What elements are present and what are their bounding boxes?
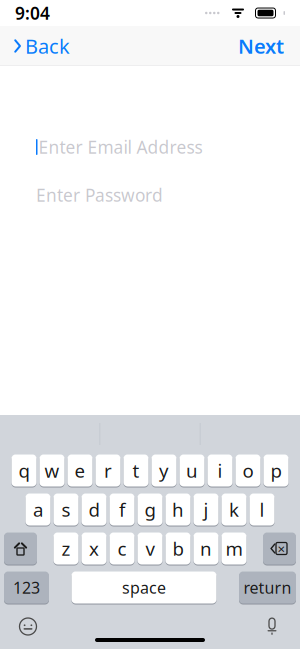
staticText: n [200, 536, 212, 561]
staticText: l [259, 497, 264, 522]
staticText: × [277, 540, 285, 557]
button[interactable]: Back [4, 25, 79, 67]
staticText: r [104, 458, 112, 483]
staticText: Enter Password [36, 183, 163, 206]
staticText: u [186, 458, 198, 483]
button[interactable]: q [11, 454, 36, 487]
button[interactable]: g [137, 493, 162, 526]
button[interactable]: r [95, 454, 120, 487]
button[interactable]: m [221, 532, 246, 565]
staticText: y [159, 458, 169, 483]
button[interactable]: w [39, 454, 64, 487]
button[interactable]: b [165, 532, 190, 565]
staticText: m [225, 536, 242, 561]
button[interactable]: return [239, 571, 296, 604]
button[interactable]: z [53, 532, 78, 565]
staticText: g [144, 497, 155, 522]
button[interactable]: v [137, 532, 162, 565]
staticText: e [74, 458, 85, 483]
staticText: k [229, 497, 239, 522]
button[interactable]: Delete [263, 532, 296, 565]
staticText: s [61, 497, 70, 522]
button[interactable]: l [249, 493, 274, 526]
staticText: f [119, 497, 125, 522]
button[interactable]: Shift [4, 532, 37, 565]
button[interactable]: c [109, 532, 134, 565]
staticText: d [88, 497, 99, 522]
staticText: o [242, 458, 253, 483]
button[interactable]: u [179, 454, 204, 487]
button[interactable]: d [81, 493, 106, 526]
button[interactable]: a [25, 493, 50, 526]
staticText: b [172, 536, 183, 561]
staticText: a [33, 497, 43, 522]
staticText: return [243, 577, 291, 598]
button[interactable]: Dictate [257, 611, 287, 641]
staticText: Next [238, 33, 284, 59]
staticText: c [117, 536, 126, 561]
button[interactable]: n [193, 532, 218, 565]
staticText: space [122, 577, 166, 598]
staticText: 123 [13, 577, 40, 598]
staticText: w [44, 458, 59, 483]
staticText: x [89, 536, 99, 561]
staticText: h [172, 497, 184, 522]
staticText: t [132, 458, 139, 483]
staticText: j [203, 497, 208, 522]
button[interactable]: i [207, 454, 232, 487]
staticText: Enter Email Address [38, 135, 202, 158]
button[interactable]: Next [226, 25, 296, 67]
button[interactable]: f [109, 493, 134, 526]
button[interactable]: p [263, 454, 288, 487]
staticText: 9:04 [15, 1, 50, 24]
button[interactable]: Enter Email Address [0, 136, 300, 158]
button[interactable]: space [71, 571, 216, 604]
staticText: p [270, 458, 281, 483]
staticText: z [61, 536, 70, 561]
button[interactable]: x [81, 532, 106, 565]
staticText: Back [25, 33, 70, 59]
button[interactable]: Enter Password [0, 184, 300, 206]
button[interactable]: t [123, 454, 148, 487]
staticText: i [217, 458, 222, 483]
button[interactable]: e [67, 454, 92, 487]
button[interactable]: o [235, 454, 260, 487]
button[interactable]: s [53, 493, 78, 526]
button[interactable]: 123 [4, 571, 49, 604]
button[interactable]: Emoji [13, 611, 43, 641]
button[interactable]: h [165, 493, 190, 526]
staticText: q [18, 458, 29, 483]
staticText: v [145, 536, 154, 561]
button[interactable]: y [151, 454, 176, 487]
button[interactable]: k [221, 493, 246, 526]
button[interactable]: j [193, 493, 218, 526]
